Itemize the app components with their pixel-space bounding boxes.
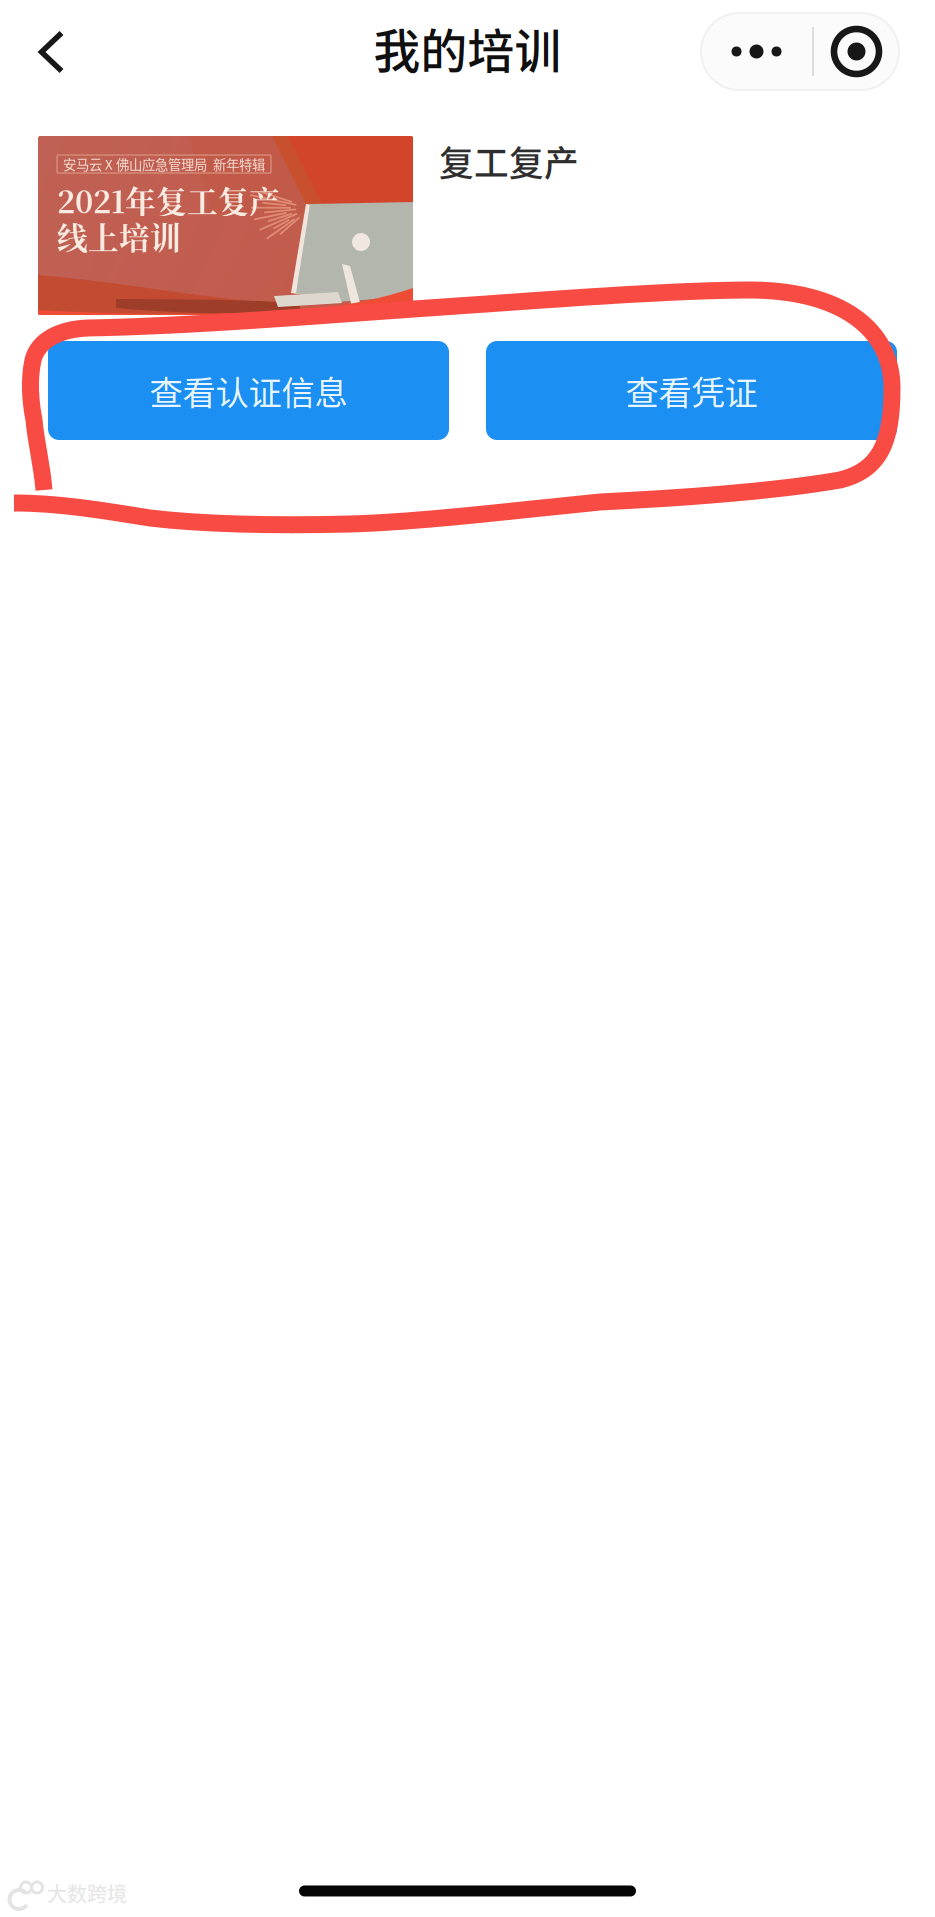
- staticText: 安马云 X 佛山应急管理局 新年特辑: [63, 154, 265, 174]
- staticText: 2021年复工复产: [57, 178, 280, 222]
- button[interactable]: More options: [701, 6, 899, 90]
- staticText: 复工复产: [439, 136, 579, 186]
- staticText: 大数跨境: [47, 1878, 127, 1907]
- staticText: 查看凭证: [625, 366, 757, 415]
- button[interactable]: 查看认证信息: [48, 341, 449, 440]
- staticText: 查看认证信息: [149, 366, 347, 415]
- button[interactable]: 查看凭证: [486, 341, 897, 440]
- staticText: 线上培训: [57, 214, 181, 258]
- button[interactable]: Back: [0, 0, 104, 100]
- staticText: 我的培训: [373, 14, 561, 82]
